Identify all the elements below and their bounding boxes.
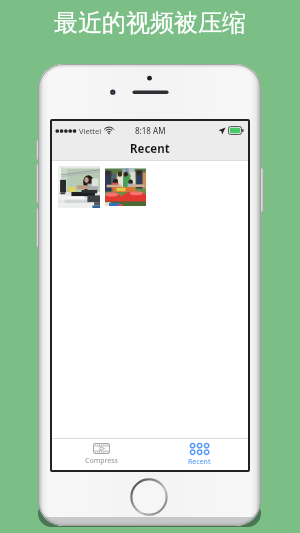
staticText: Compress bbox=[85, 456, 118, 466]
button[interactable]: Recent bbox=[150, 439, 248, 470]
button[interactable] bbox=[105, 168, 146, 206]
button[interactable]: Compress bbox=[52, 439, 150, 470]
staticText: Recent bbox=[188, 457, 211, 467]
staticText: 8:18 AM bbox=[135, 125, 166, 136]
staticText: 最近的视频被压缩 bbox=[0, 8, 300, 38]
staticText: Recent bbox=[130, 141, 170, 157]
button[interactable] bbox=[58, 166, 100, 208]
staticText: Viettel bbox=[79, 126, 102, 136]
